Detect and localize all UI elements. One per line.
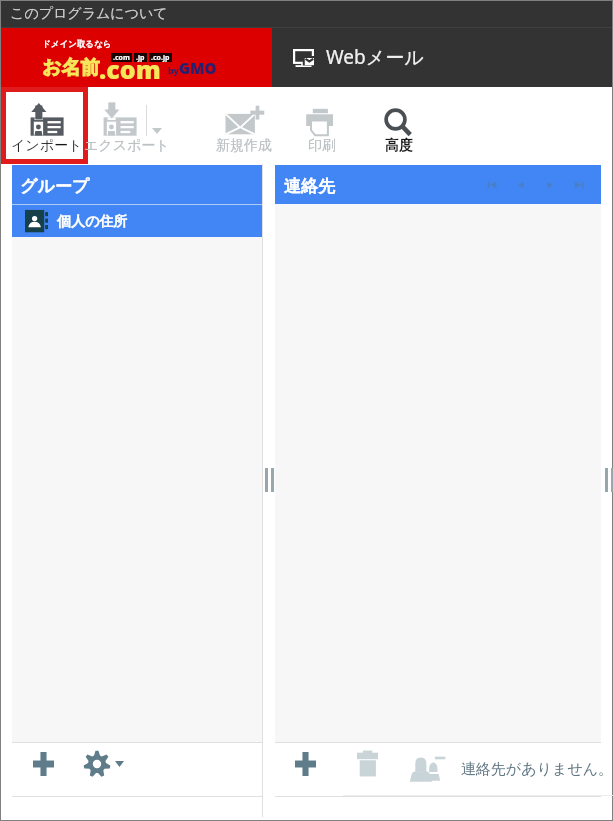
staticText: 個人の住所 xyxy=(57,213,128,231)
button[interactable]: Resize panel xyxy=(605,468,613,492)
button[interactable]: 個人の住所 xyxy=(12,205,262,237)
button[interactable]: Previous page xyxy=(511,175,531,195)
button[interactable]: Export options xyxy=(152,128,162,134)
staticText: .co.jp xyxy=(151,53,170,62)
button[interactable]: インポート xyxy=(0,87,97,164)
button[interactable]: Contact group options xyxy=(409,755,446,782)
staticText: グループ xyxy=(20,176,90,197)
staticText: .com xyxy=(99,52,161,86)
button[interactable] xyxy=(6,92,83,159)
button[interactable]: エクスポート xyxy=(77,87,177,164)
button[interactable]: グループ xyxy=(12,165,262,204)
button[interactable]: 連絡先 xyxy=(275,165,601,204)
staticText: 連絡先 xyxy=(284,176,335,197)
staticText: 連絡先がありません。 xyxy=(461,760,613,779)
staticText: このプログラムについて xyxy=(10,5,168,23)
staticText: GMO xyxy=(179,58,217,78)
staticText: .com xyxy=(113,53,130,62)
staticText: Webメール xyxy=(326,44,424,70)
staticText: お名前 xyxy=(42,56,100,80)
button[interactable]: Resize panel xyxy=(265,468,274,492)
button[interactable]: Add group xyxy=(33,752,54,776)
button[interactable]: Group settings xyxy=(83,750,111,778)
button[interactable]: Next page xyxy=(540,175,560,195)
staticText: 印刷 xyxy=(308,137,336,155)
staticText: インポート xyxy=(11,137,83,155)
staticText: by xyxy=(168,64,179,76)
button[interactable]: 新規作成 xyxy=(194,87,294,164)
button[interactable]: 印刷 xyxy=(272,87,372,164)
button[interactable]: Last page xyxy=(569,175,589,195)
button[interactable]: 高度 xyxy=(349,87,449,164)
staticText: エクスポート xyxy=(84,137,170,155)
staticText: 新規作成 xyxy=(216,137,272,155)
staticText: .jp xyxy=(136,53,145,62)
button[interactable]: First page xyxy=(482,175,502,195)
staticText: ドメイン取るなら xyxy=(42,39,112,50)
staticText: 高度 xyxy=(385,137,413,155)
button[interactable]: Add contact xyxy=(295,752,316,776)
button[interactable]: Delete contact xyxy=(357,750,378,777)
